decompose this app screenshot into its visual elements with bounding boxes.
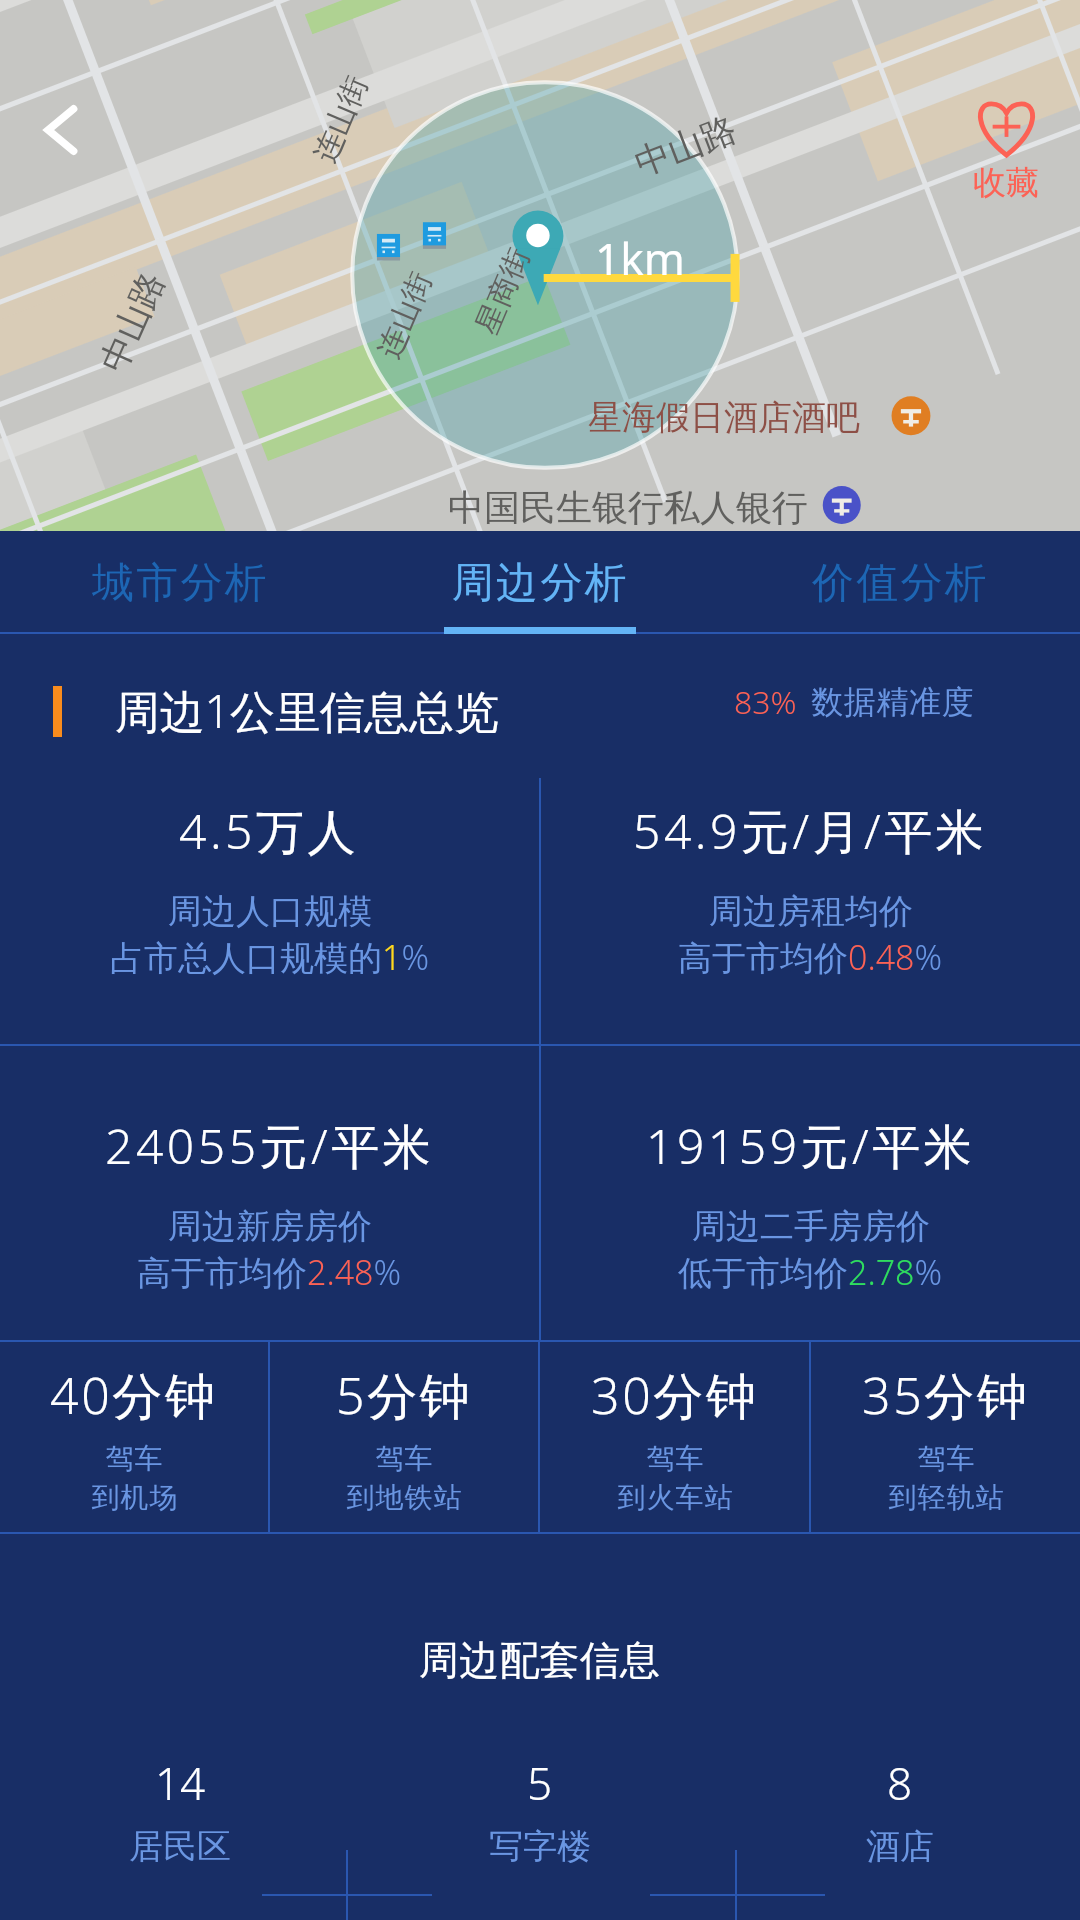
button[interactable]: 价值分析 [720, 531, 1080, 634]
staticText: 酒店 [866, 1825, 934, 1868]
staticText: 8 [887, 1753, 913, 1813]
staticText: 低于市均价2.78% [678, 1249, 943, 1295]
button[interactable]: 5分钟 [270, 1342, 538, 1532]
staticText: 城市分析 [92, 557, 269, 610]
staticText: 驾车 [375, 1441, 433, 1476]
staticText: 中山路 [91, 265, 174, 379]
staticText: 占市总人口规模的1% [110, 934, 430, 980]
staticText: 30分钟 [591, 1361, 759, 1429]
button[interactable]: 24055元/平米 [0, 1046, 539, 1340]
staticText: 驾车 [646, 1441, 704, 1476]
button[interactable]: Back [18, 84, 110, 176]
staticText: 到轻轨站 [888, 1480, 1004, 1515]
staticText: 价值分析 [812, 557, 989, 610]
staticText: 14 [155, 1753, 206, 1813]
button[interactable]: 30分钟 [540, 1342, 809, 1532]
button[interactable]: 40分钟 [0, 1342, 268, 1532]
staticText: 周边配套信息 [419, 1635, 661, 1685]
staticText: 5 [527, 1753, 553, 1813]
staticText: 连山街 [306, 70, 376, 168]
staticText: 驾车 [105, 1441, 163, 1476]
button[interactable]: 19159元/平米 [541, 1046, 1080, 1340]
staticText: 周边房租均价 [709, 890, 913, 933]
button[interactable]: 4.5万人 [0, 778, 539, 1044]
staticText: 高于市均价2.48% [137, 1249, 402, 1295]
staticText: 83% [734, 680, 797, 724]
staticText: 数据精准度 [811, 682, 974, 722]
staticText: 4.5万人 [179, 798, 360, 864]
staticText: 星商街 [468, 242, 538, 340]
staticText: 到机场 [91, 1480, 178, 1515]
button[interactable]: 收藏 [973, 101, 1039, 204]
staticText: 19159元/平米 [646, 1113, 976, 1179]
staticText: 40分钟 [50, 1361, 218, 1429]
staticText: 35分钟 [862, 1361, 1030, 1429]
staticText: 中山路 [629, 107, 742, 185]
button[interactable]: 35分钟 [811, 1342, 1080, 1532]
button[interactable]: 周边分析 [360, 531, 720, 634]
staticText: 写字楼 [489, 1825, 591, 1868]
button[interactable]: 54.9元/月/平米 [541, 778, 1080, 1044]
staticText: 居民区 [129, 1825, 231, 1868]
button[interactable]: 5 [360, 1753, 720, 1868]
staticText: 连山街 [370, 266, 440, 364]
staticText: 驾车 [917, 1441, 975, 1476]
staticText: 周边二手房房价 [692, 1205, 930, 1248]
staticText: 周边分析 [452, 557, 629, 610]
staticText: 54.9元/月/平米 [633, 798, 988, 864]
staticText: 周边1公里信息总览 [115, 680, 499, 741]
staticText: 周边新房房价 [168, 1205, 372, 1248]
staticText: 1km [595, 228, 685, 288]
button[interactable]: 8 [720, 1753, 1080, 1868]
staticText: 到地铁站 [346, 1480, 462, 1515]
staticText: 到火车站 [617, 1480, 733, 1515]
button[interactable]: 14 [0, 1753, 360, 1868]
staticText: 星海假日酒店酒吧 [588, 396, 860, 439]
staticText: 收藏 [973, 162, 1039, 204]
staticText: 高于市均价0.48% [678, 934, 943, 980]
staticText: 24055元/平米 [105, 1113, 435, 1179]
staticText: 中国民生银行私人银行 [448, 485, 808, 530]
button[interactable]: 城市分析 [0, 531, 360, 634]
staticText: 5分钟 [336, 1361, 473, 1429]
staticText: 周边人口规模 [168, 890, 372, 933]
